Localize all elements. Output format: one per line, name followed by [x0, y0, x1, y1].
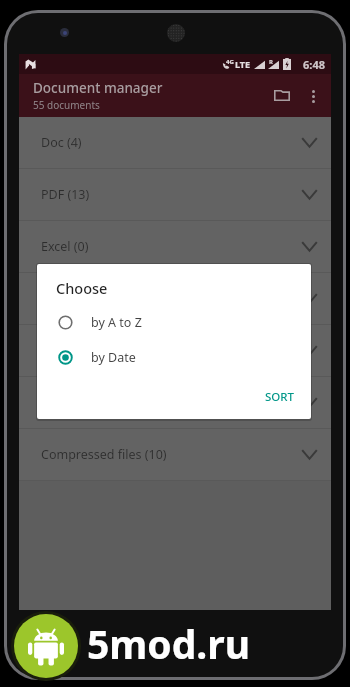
staticText: Doc (4) [41, 134, 301, 151]
staticText: 4G [226, 58, 234, 66]
button[interactable]: SORT [256, 383, 304, 411]
button[interactable]: Compressed files (10) [19, 429, 331, 480]
button[interactable]: by Date [37, 340, 311, 375]
staticText: Excel (0) [41, 238, 301, 255]
button[interactable]: Ebook (0) [19, 377, 331, 428]
staticText: Document manager [33, 79, 163, 97]
staticText: Compressed files (10) [41, 446, 301, 463]
staticText: 55 documents [33, 98, 100, 112]
staticText: PPT (0) [41, 290, 301, 307]
button[interactable]: by A to Z [37, 305, 311, 340]
button[interactable]: More options [298, 81, 328, 111]
staticText: R [269, 58, 273, 66]
staticText: 6:48 [303, 57, 325, 72]
button[interactable]: PPT (0) [19, 273, 331, 324]
staticText: 5mod.ru [87, 617, 251, 670]
button[interactable]: Folders [264, 79, 298, 113]
staticText: by Date [91, 349, 136, 366]
staticText: Ebook (0) [41, 394, 301, 411]
staticText: Text (8) [41, 342, 301, 359]
button[interactable]: Doc (4) [19, 117, 331, 168]
button[interactable]: Text (8) [19, 325, 331, 376]
button[interactable]: PDF (13) [19, 169, 331, 220]
staticText: PDF (13) [41, 186, 301, 203]
staticText: Choose [56, 278, 108, 298]
staticText: SORT [265, 389, 295, 405]
button[interactable]: Excel (0) [19, 221, 331, 272]
staticText: by A to Z [91, 314, 142, 331]
staticText: LTE [235, 58, 251, 70]
